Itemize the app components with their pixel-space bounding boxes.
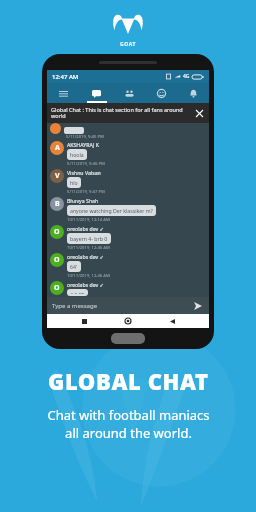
button[interactable]: O [50,252,206,280]
staticText: Chat with football maniacs [47,406,210,424]
other: Fingerprint sensor [111,333,145,344]
staticText: 10/11/2019, 12:46 AM [67,273,110,279]
staticText: O [54,227,60,237]
staticText: V [55,171,60,181]
staticText: 10/11/2019, 12:46 AM [67,245,110,251]
staticText: all around the world. [65,424,192,442]
button[interactable]: Recents [77,314,91,328]
button[interactable]: O [50,224,206,252]
staticText: oreolabs dev ✓ [67,253,104,260]
staticText: GLOBAL CHAT [48,366,209,396]
button[interactable]: Chat [80,83,113,103]
staticText: 5/11/2019, 9:46 PM [67,161,105,167]
button[interactable]: Emoji [145,83,177,103]
staticText: 5/11/2019, 9:45 PM [66,134,104,140]
staticText: 4 0 FT [70,291,85,294]
button[interactable]: Feed [47,83,80,103]
staticText: anyone watching Der klassiker m? [70,207,153,214]
staticText: B [55,199,60,209]
staticText: 10/11/2019, 12:14 AM [67,217,110,223]
button[interactable]: Send [191,299,204,312]
staticText: 64' [70,263,78,270]
staticText: Vishnu Valsan [67,169,101,176]
staticText: Bhavya Shah [67,197,99,204]
button[interactable]: V [50,168,206,196]
button[interactable]: O [50,280,206,297]
staticText: Global Chat : This is chat section for a… [51,106,193,120]
staticText: oreolabs dev ✓ [67,281,104,288]
staticText: O [54,255,60,265]
button[interactable]: B [50,196,206,224]
button[interactable]: Groups [113,83,145,103]
button[interactable]: Close banner [193,107,205,119]
staticText: bayern 4- brb 0 [70,235,108,242]
staticText: 5/11/2019, 9:47 PM [67,189,105,195]
button[interactable]: Home [121,314,135,328]
staticText: GOAT [120,41,136,48]
button[interactable]: Notifications [177,83,209,103]
staticText: hoola [70,151,84,158]
staticText: Type a message [52,302,191,310]
staticText: A [55,143,60,153]
button[interactable]: A [50,140,206,168]
staticText: hlo [70,179,78,186]
staticText: 12:47 AM [52,73,79,81]
staticText: oreolabs dev ✓ [67,225,104,232]
button[interactable]: Back [165,314,179,328]
staticText: AKSHAYRAJ K [67,141,99,148]
staticText: 4G [183,73,190,80]
staticText: O [54,283,60,293]
